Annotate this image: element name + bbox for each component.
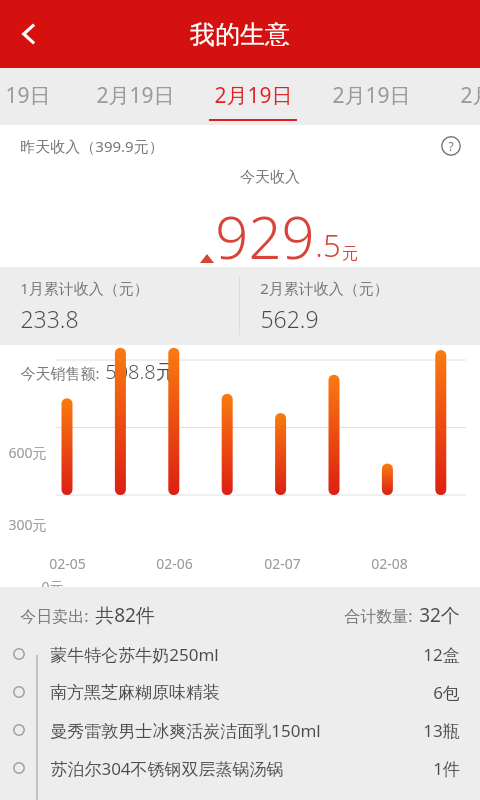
staticText: 今天销售额: bbox=[20, 363, 100, 383]
staticText: 32个 bbox=[419, 602, 460, 628]
button[interactable]: 苏泊尔304不锈钢双层蒸锅汤锅 bbox=[0, 749, 480, 787]
staticText: 12盒 bbox=[423, 643, 460, 666]
staticText: ? bbox=[448, 138, 454, 154]
button[interactable]: 曼秀雷敦男士冰爽活炭洁面乳150ml bbox=[0, 711, 480, 749]
staticText: 共82件 bbox=[95, 602, 155, 628]
button[interactable]: 蒙牛特仑苏牛奶250ml bbox=[0, 635, 480, 673]
staticText: 合计数量: bbox=[344, 605, 413, 627]
button[interactable]: 2月19日 bbox=[79, 68, 191, 125]
staticText: 508.8元 bbox=[105, 358, 176, 385]
staticText: 0元 bbox=[41, 577, 64, 587]
staticText: 2月19 bbox=[460, 81, 480, 110]
button[interactable]: 2月累计收入（元） bbox=[260, 267, 480, 345]
staticText: 2月19日 bbox=[332, 81, 411, 110]
staticText: 929 bbox=[215, 197, 315, 276]
button[interactable]: 19日 bbox=[0, 68, 84, 125]
staticText: 元 bbox=[342, 244, 358, 264]
staticText: 2月19日 bbox=[96, 81, 175, 110]
staticText: 562.9 bbox=[260, 303, 319, 334]
staticText: 233.8 bbox=[20, 303, 79, 334]
staticText: 南方黑芝麻糊原味精装 bbox=[50, 682, 220, 703]
button[interactable]: 南方黑芝麻糊原味精装 bbox=[0, 673, 480, 711]
staticText: 昨天收入（399.9元） bbox=[20, 136, 164, 156]
staticText: 6包 bbox=[433, 681, 460, 704]
staticText: 今天收入 bbox=[240, 168, 300, 187]
staticText: 我的生意 bbox=[190, 19, 290, 50]
staticText: 苏泊尔304不锈钢双层蒸锅汤锅 bbox=[50, 757, 284, 780]
staticText: 02-07 bbox=[264, 554, 301, 573]
staticText: 蒙牛特仑苏牛奶250ml bbox=[50, 643, 219, 666]
staticText: 02-08 bbox=[371, 554, 408, 573]
button[interactable]: Help bbox=[434, 129, 468, 163]
staticText: 今日卖出: bbox=[20, 605, 89, 627]
button[interactable]: 1月累计收入（元） bbox=[20, 267, 239, 345]
staticText: 1月累计收入（元） bbox=[20, 278, 149, 298]
staticText: 600元 bbox=[8, 443, 47, 462]
button[interactable]: 2月19 bbox=[433, 68, 480, 125]
button[interactable]: Back bbox=[0, 0, 58, 68]
staticText: 02-06 bbox=[156, 554, 193, 573]
button[interactable]: 2月19日 bbox=[315, 68, 427, 125]
staticText: 300元 bbox=[8, 515, 47, 534]
staticText: 19日 bbox=[5, 81, 51, 110]
staticText: .5 bbox=[315, 224, 341, 266]
staticText: 2月累计收入（元） bbox=[260, 278, 389, 298]
button[interactable]: 2月19日 bbox=[197, 68, 309, 125]
staticText: 13瓶 bbox=[423, 719, 460, 742]
staticText: 1件 bbox=[433, 757, 460, 780]
staticText: 曼秀雷敦男士冰爽活炭洁面乳150ml bbox=[50, 719, 321, 742]
staticText: 02-05 bbox=[49, 554, 86, 573]
staticText: 2月19日 bbox=[214, 81, 293, 110]
